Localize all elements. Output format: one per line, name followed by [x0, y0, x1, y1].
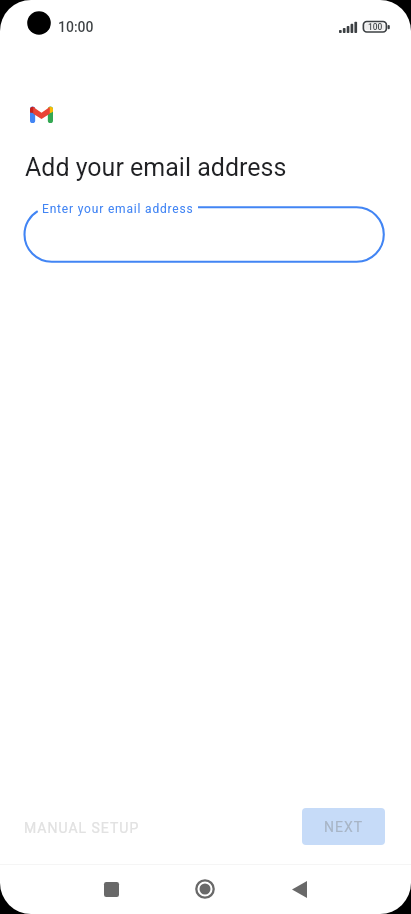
button[interactable]: MANUAL SETUP	[12, 810, 152, 846]
button[interactable]: Home	[180, 864, 230, 914]
button[interactable]: Enter your email address	[25, 207, 384, 261]
staticText: 10:00	[58, 19, 94, 35]
staticText: 100	[368, 22, 383, 32]
staticText: NEXT	[324, 819, 364, 835]
button[interactable]: Back	[274, 864, 324, 914]
staticText: Enter your email address	[42, 202, 194, 216]
button[interactable]: NEXT	[302, 808, 385, 845]
staticText: Add your email address	[25, 153, 287, 182]
button[interactable]: Recent apps	[86, 864, 136, 914]
staticText: MANUAL SETUP	[24, 820, 140, 836]
